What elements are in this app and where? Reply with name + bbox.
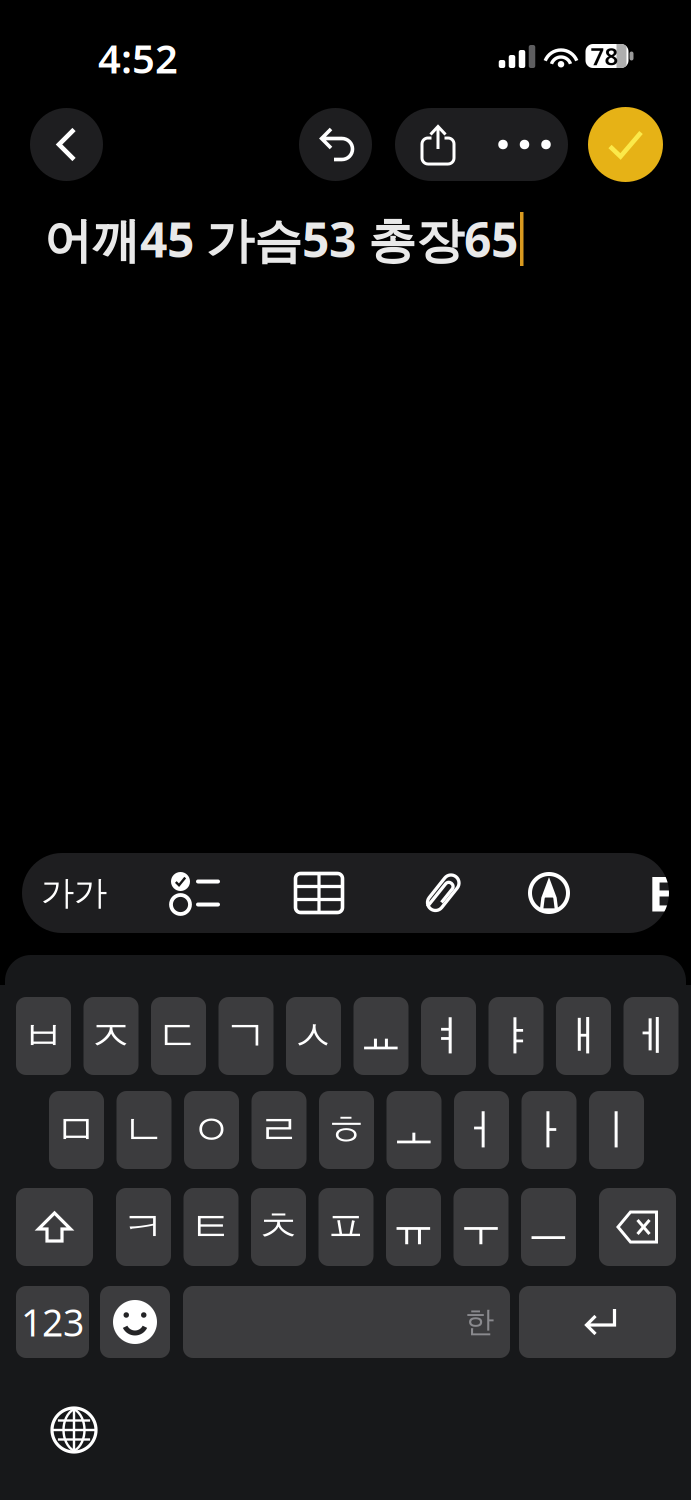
- staticText: ㄱ: [224, 1010, 267, 1062]
- button[interactable]: ㅌ: [183, 1188, 238, 1266]
- staticText: ㅕ: [427, 1010, 470, 1062]
- staticText: ㄷ: [157, 1010, 200, 1062]
- button[interactable]: ㅋ: [116, 1188, 171, 1266]
- button[interactable]: ㅎ: [319, 1091, 374, 1169]
- button[interactable]: Attach: [395, 853, 491, 933]
- button[interactable]: ㅛ: [353, 997, 408, 1075]
- button[interactable]: ㅑ: [488, 997, 543, 1075]
- button[interactable]: Table: [271, 853, 367, 933]
- staticText: ㅛ: [359, 1010, 402, 1062]
- button[interactable]: ㅍ: [318, 1188, 373, 1266]
- staticText: ㅐ: [562, 1010, 605, 1062]
- button[interactable]: Next keyboard: [52, 1408, 96, 1452]
- button[interactable]: Checklist: [147, 853, 243, 933]
- button[interactable]: ㄴ: [116, 1091, 171, 1169]
- button[interactable]: ㅏ: [521, 1091, 576, 1169]
- staticText: ㅈ: [89, 1010, 132, 1062]
- staticText: 123: [21, 1297, 84, 1347]
- button[interactable]: ㅕ: [421, 997, 476, 1075]
- staticText: ㅑ: [494, 1010, 537, 1062]
- button[interactable]: ㅓ: [454, 1091, 509, 1169]
- button[interactable]: ㅜ: [453, 1188, 508, 1266]
- staticText: 4:52: [98, 31, 178, 84]
- staticText: ㅅ: [292, 1010, 335, 1062]
- staticText: ㅇ: [190, 1104, 233, 1156]
- staticText: ㅌ: [189, 1201, 232, 1253]
- button[interactable]: Space: [183, 1286, 510, 1358]
- button[interactable]: ㅡ: [521, 1188, 576, 1266]
- button[interactable]: 가가: [24, 853, 124, 933]
- button[interactable]: ㅔ: [623, 997, 678, 1075]
- button[interactable]: More: [481, 108, 568, 181]
- button[interactable]: Done: [588, 107, 663, 182]
- button[interactable]: ㄱ: [218, 997, 273, 1075]
- button[interactable]: ㅂ: [16, 997, 71, 1075]
- staticText: ㅊ: [257, 1201, 300, 1253]
- staticText: ㅓ: [460, 1104, 503, 1156]
- button[interactable]: Return: [519, 1286, 676, 1358]
- staticText: ㅍ: [324, 1201, 367, 1253]
- button[interactable]: 123: [16, 1286, 89, 1358]
- staticText: E: [648, 861, 675, 925]
- button[interactable]: ㅅ: [286, 997, 341, 1075]
- staticText: ㅔ: [629, 1010, 672, 1062]
- button[interactable]: ㅠ: [386, 1188, 441, 1266]
- staticText: ㅂ: [22, 1010, 65, 1062]
- staticText: ㅣ: [595, 1104, 638, 1156]
- button[interactable]: ㅈ: [83, 997, 138, 1075]
- button[interactable]: ㅗ: [386, 1091, 441, 1169]
- button[interactable]: ㅁ: [49, 1091, 104, 1169]
- staticText: 어깨45 가슴53 총장65: [44, 207, 518, 271]
- button[interactable]: Emoji: [100, 1286, 170, 1358]
- button[interactable]: Markup: [501, 853, 597, 933]
- button[interactable]: Back: [30, 108, 103, 181]
- staticText: 78: [590, 40, 618, 72]
- staticText: ㅡ: [527, 1201, 570, 1253]
- button[interactable]: ㅐ: [556, 997, 611, 1075]
- staticText: ㅗ: [392, 1104, 435, 1156]
- button[interactable]: ㅊ: [251, 1188, 306, 1266]
- staticText: ㅏ: [527, 1104, 570, 1156]
- button[interactable]: Shift: [16, 1188, 93, 1266]
- staticText: 가가: [41, 872, 107, 913]
- staticText: ㅋ: [122, 1201, 165, 1253]
- staticText: ㅁ: [55, 1104, 98, 1156]
- button[interactable]: ㅇ: [184, 1091, 239, 1169]
- staticText: ㅠ: [392, 1201, 435, 1253]
- staticText: ㅎ: [325, 1104, 368, 1156]
- button[interactable]: Delete: [599, 1188, 676, 1266]
- staticText: ㅜ: [459, 1201, 502, 1253]
- button[interactable]: ㄹ: [251, 1091, 306, 1169]
- button[interactable]: Undo: [299, 108, 372, 181]
- button[interactable]: Share: [395, 108, 481, 181]
- button[interactable]: ㅣ: [589, 1091, 644, 1169]
- staticText: 한: [465, 1304, 494, 1340]
- button[interactable]: ㄷ: [151, 997, 206, 1075]
- staticText: ㄴ: [122, 1104, 165, 1156]
- staticText: ㄹ: [257, 1104, 300, 1156]
